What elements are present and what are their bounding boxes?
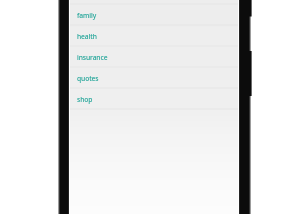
button[interactable]: family [70,4,238,25]
staticText: shop [77,95,93,104]
button[interactable]: health [70,25,238,46]
staticText: health [77,32,97,41]
staticText: insurance [77,53,108,62]
staticText: quotes [77,74,99,83]
button[interactable]: insurance [70,46,238,67]
button[interactable]: shop [70,88,238,109]
button[interactable]: quotes [70,67,238,88]
staticText: family [77,11,97,20]
